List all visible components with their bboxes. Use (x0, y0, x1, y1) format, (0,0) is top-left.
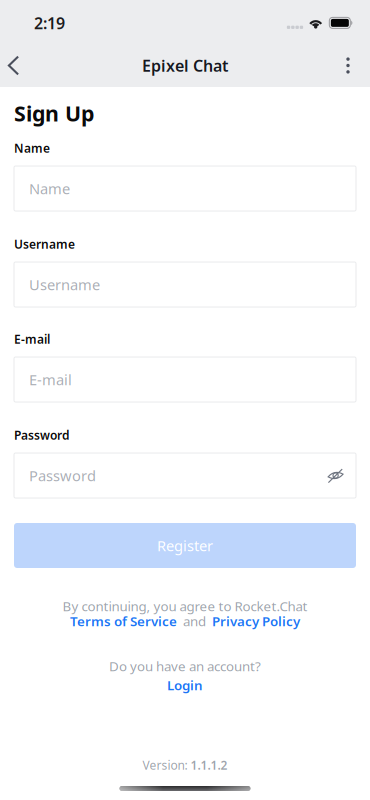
staticText: Username (29, 275, 100, 294)
button[interactable]: Back (0, 44, 33, 87)
button[interactable]: Register (14, 523, 356, 568)
staticText: Username (14, 236, 75, 252)
staticText: Version: (142, 757, 190, 773)
staticText: Password (14, 427, 70, 443)
staticText: Login (167, 676, 203, 694)
staticText: 2:19 (34, 12, 65, 34)
button[interactable]: Terms of Service (70, 612, 177, 630)
staticText: E-mail (14, 331, 50, 347)
button[interactable]: Login (167, 676, 203, 694)
button[interactable]: Privacy Policy (212, 612, 300, 630)
button[interactable]: More options (328, 44, 368, 87)
staticText: Terms of Service (70, 612, 177, 630)
staticText: Register (157, 536, 213, 555)
staticText: Name (29, 179, 70, 198)
staticText: and (177, 612, 212, 630)
staticText: 1.1.1.2 (190, 757, 227, 773)
staticText: Do you have an account? (109, 657, 261, 675)
staticText: Name (14, 140, 50, 156)
staticText: Sign Up (14, 99, 94, 127)
staticText: Privacy Policy (212, 612, 300, 630)
staticText: E-mail (29, 370, 72, 389)
staticText: Epixel Chat (142, 55, 228, 76)
staticText: Password (29, 466, 96, 485)
staticText: By continuing, you agree to Rocket.Chat (62, 597, 307, 615)
